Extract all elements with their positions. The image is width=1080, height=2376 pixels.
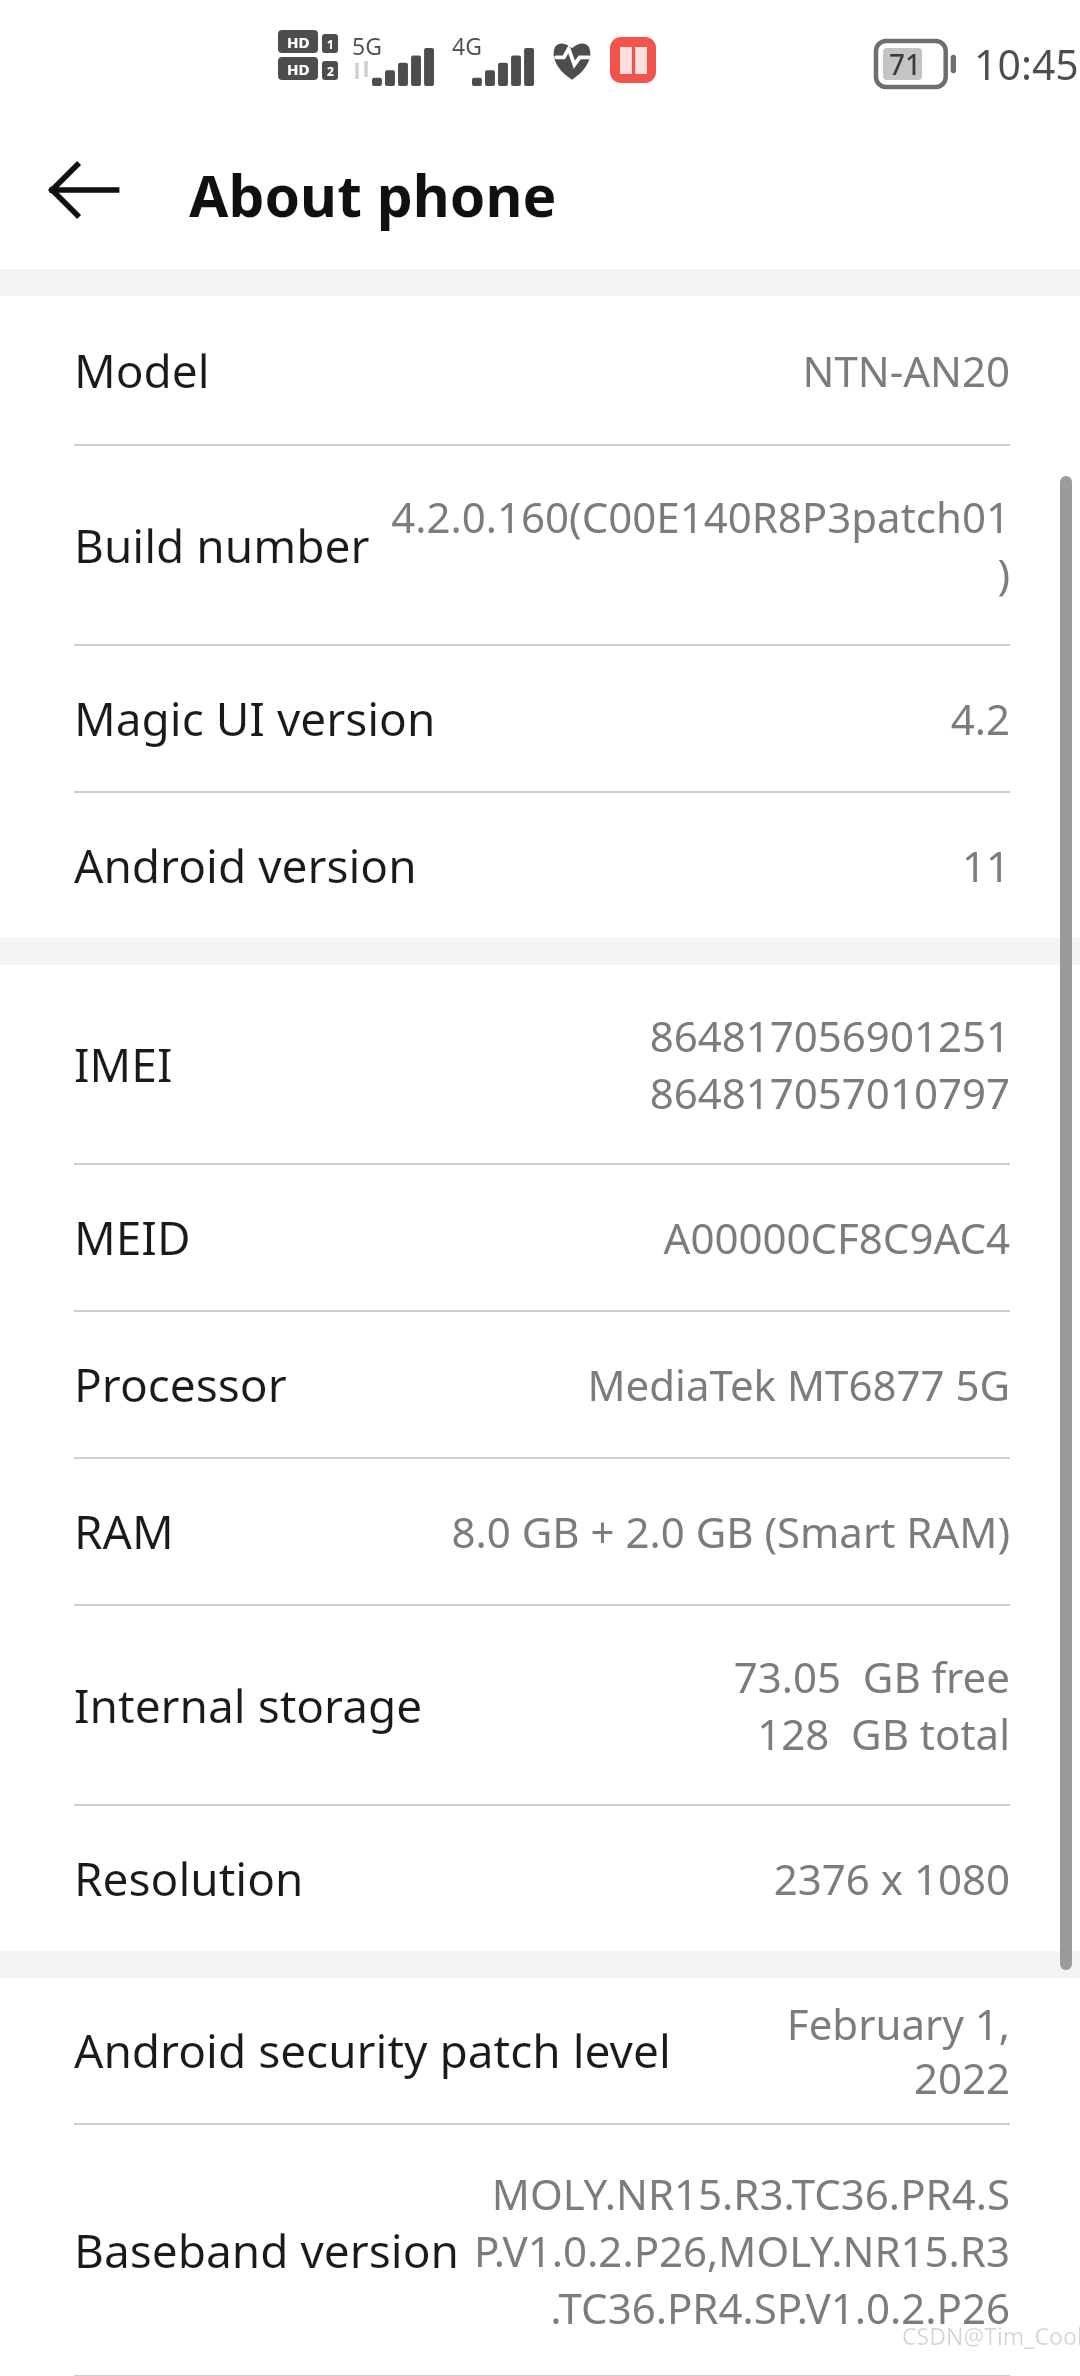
button[interactable]: Processor: [0, 1312, 1080, 1457]
button[interactable]: Model: [0, 296, 1080, 444]
staticText: Processor: [74, 1353, 287, 1416]
staticText: HD: [287, 59, 310, 79]
staticText: 2: [327, 63, 334, 79]
button[interactable]: Back: [46, 152, 122, 228]
staticText: A00000CF8C9AC4: [663, 1209, 1010, 1266]
button[interactable]: Baseband version: [0, 2125, 1080, 2375]
staticText: 10:45: [974, 36, 1079, 92]
button[interactable]: IMEI: [0, 965, 1080, 1163]
staticText: 128 GB total: [757, 1705, 1010, 1762]
staticText: RAM: [74, 1500, 174, 1563]
button[interactable]: Build number: [0, 446, 1080, 644]
button[interactable]: Android version: [0, 793, 1080, 938]
staticText: Android security patch level: [74, 2019, 671, 2082]
staticText: CSDN@Tim_Cookerr: [902, 2320, 1080, 2351]
staticText: 71: [889, 45, 922, 83]
staticText: Android version: [74, 834, 417, 897]
staticText: About phone: [189, 156, 557, 234]
staticText: Magic UI version: [74, 687, 436, 750]
staticText: 11: [961, 837, 1010, 894]
staticText: 2376 x 1080: [773, 1850, 1010, 1907]
button[interactable]: Android security patch level: [0, 1978, 1080, 2123]
staticText: 5G: [352, 30, 382, 61]
staticText: 4.2.0.160(C00E140R8P3patch01: [391, 488, 1010, 545]
staticText: IMEI: [74, 1033, 173, 1096]
staticText: 8.0 GB + 2.0 GB (Smart RAM): [451, 1503, 1010, 1560]
staticText: Model: [74, 339, 210, 402]
button[interactable]: Magic UI version: [0, 646, 1080, 791]
staticText: Internal storage: [74, 1674, 423, 1737]
staticText: HD: [287, 32, 310, 52]
staticText: MediaTek MT6877 5G: [587, 1356, 1010, 1413]
staticText: Resolution: [74, 1847, 304, 1910]
staticText: 4.2: [950, 690, 1010, 747]
staticText: 1: [327, 36, 334, 52]
staticText: P.V1.0.2.P26,MOLY.NR15.R3: [473, 2222, 1010, 2279]
staticText: Build number: [74, 514, 370, 577]
staticText: ): [997, 545, 1010, 602]
button[interactable]: Resolution: [0, 1806, 1080, 1951]
staticText: 864817056901251: [649, 1007, 1010, 1064]
staticText: MEID: [74, 1206, 191, 1269]
staticText: Baseband version: [74, 2219, 459, 2282]
button[interactable]: RAM: [0, 1459, 1080, 1604]
button[interactable]: MEID: [0, 1165, 1080, 1310]
button[interactable]: Internal storage: [0, 1606, 1080, 1804]
staticText: February 1, 2022: [681, 1995, 1010, 2107]
staticText: NTN-AN20: [802, 342, 1010, 399]
staticText: .TC36.PR4.SP.V1.0.2.P26: [550, 2279, 1010, 2336]
staticText: 864817057010797: [649, 1064, 1010, 1121]
staticText: 73.05 GB free: [733, 1648, 1010, 1705]
staticText: MOLY.NR15.R3.TC36.PR4.S: [491, 2165, 1010, 2222]
staticText: 4G: [452, 30, 482, 61]
